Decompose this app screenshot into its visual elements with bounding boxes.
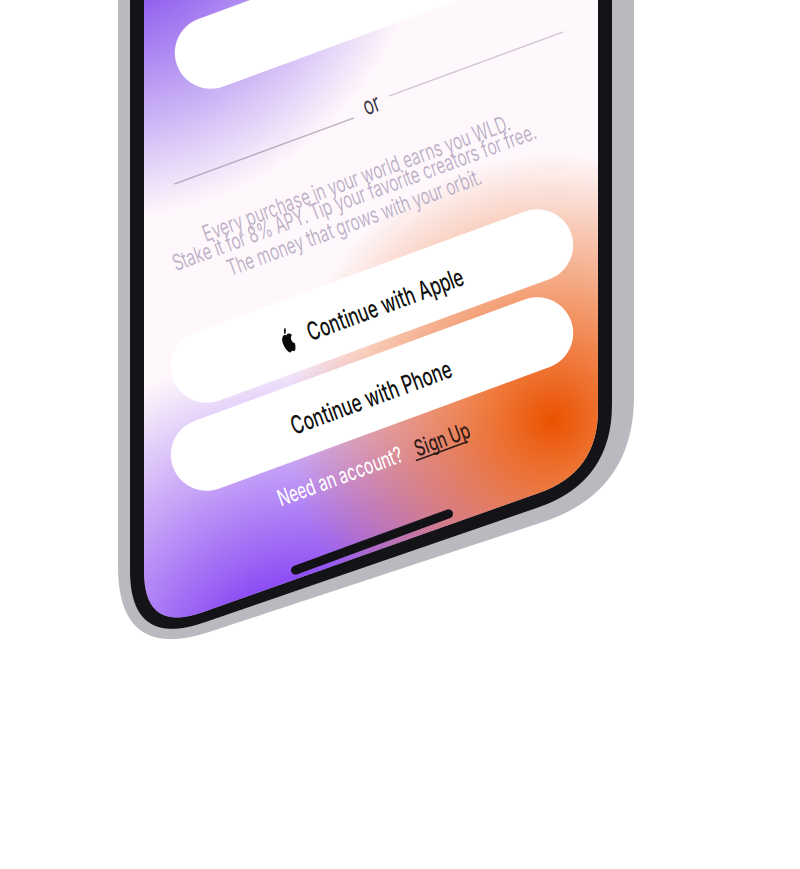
- staticText: Continue with Apple: [263, 289, 506, 319]
- staticText: or: [359, 89, 383, 119]
- staticText: Need an account?: [243, 462, 437, 490]
- button[interactable]: [0, 0, 800, 869]
- staticText: Sign Up: [399, 425, 484, 453]
- staticText: Stake it for 8% APY. Tip your favorite c…: [70, 183, 637, 211]
- button[interactable]: [0, 0, 800, 869]
- staticText: Continue with Phone: [246, 382, 496, 412]
- staticText: Every purchase in your world earns you W…: [116, 164, 595, 192]
- staticText: The money that grows with your orbit.: [156, 208, 552, 236]
- button[interactable]: [0, 0, 800, 869]
